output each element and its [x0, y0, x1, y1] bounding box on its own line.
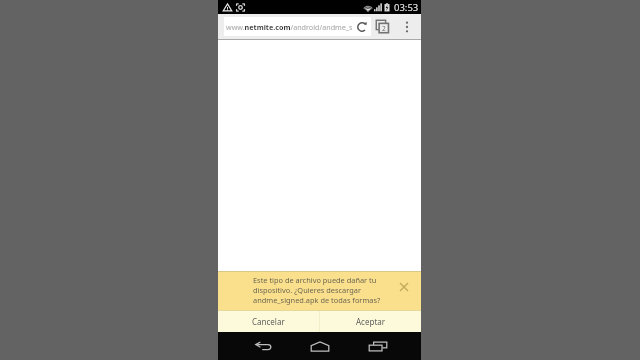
button[interactable]: Cancelar [218, 311, 319, 332]
staticText: Cancelar [252, 316, 285, 327]
button[interactable]: Recent apps [356, 332, 400, 360]
button[interactable]: Home [298, 332, 342, 360]
button[interactable]: More options [398, 14, 416, 39]
button[interactable]: Dismiss [394, 277, 414, 297]
button[interactable]: Tabs [372, 14, 392, 39]
staticText: Este tipo de archivo puede dañar tu disp… [253, 275, 381, 305]
staticText: 03:53 [394, 1, 419, 14]
button[interactable]: www.netmite.com/android/andme_s [224, 17, 371, 36]
staticText: 2 [382, 24, 386, 33]
button[interactable]: Reload [353, 17, 371, 36]
button[interactable]: Aceptar [320, 311, 421, 332]
staticText: Aceptar [356, 316, 386, 327]
staticText: www.netmite.com/android/andme_s [226, 22, 353, 32]
button[interactable]: Back [242, 332, 286, 360]
